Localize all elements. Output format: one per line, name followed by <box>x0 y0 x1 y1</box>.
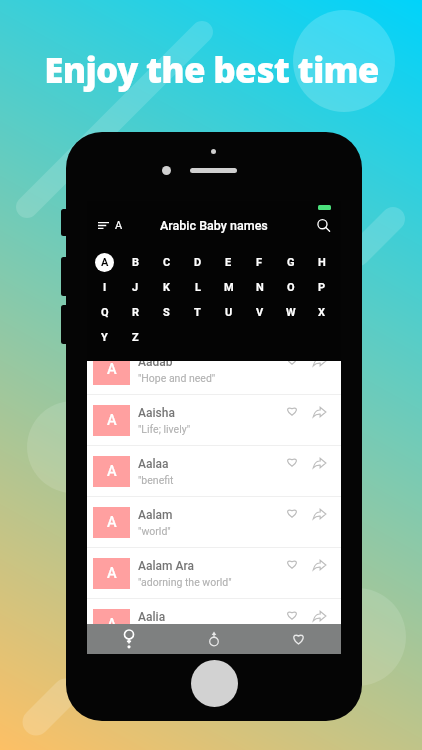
button[interactable]: O <box>275 275 306 300</box>
staticText: A <box>107 565 117 582</box>
button[interactable]: S <box>151 300 182 325</box>
staticText: Aalia <box>138 610 166 624</box>
button[interactable]: Favourite <box>286 560 298 569</box>
button[interactable]: Share <box>313 356 326 366</box>
staticText: Aalaa <box>138 457 169 471</box>
staticText: A <box>115 219 123 232</box>
staticText: U <box>225 306 233 319</box>
button[interactable]: P <box>306 275 337 300</box>
button[interactable]: X <box>306 300 337 325</box>
button[interactable]: Search <box>313 215 341 236</box>
button[interactable]: A <box>87 344 341 395</box>
staticText: V <box>256 306 264 319</box>
staticText: T <box>194 306 201 319</box>
staticText: "benefit <box>138 474 174 486</box>
button[interactable]: W <box>275 300 306 325</box>
staticText: Aalam <box>138 508 173 522</box>
button[interactable]: I <box>89 275 120 300</box>
button[interactable]: E <box>213 250 244 275</box>
staticText: B <box>132 256 140 269</box>
button[interactable]: A <box>87 446 341 497</box>
staticText: O <box>287 281 295 294</box>
staticText: E <box>225 256 232 269</box>
staticText: N <box>256 281 264 294</box>
button[interactable]: Share <box>313 458 326 468</box>
button[interactable]: N <box>244 275 275 300</box>
staticText: "world" <box>138 525 171 537</box>
button[interactable]: R <box>120 300 151 325</box>
button[interactable]: A <box>87 548 341 599</box>
staticText: F <box>256 256 263 269</box>
staticText: "Hope and need" <box>138 372 216 384</box>
staticText: Q <box>101 306 109 319</box>
button[interactable]: F <box>244 250 275 275</box>
staticText: Aaisha <box>138 406 175 420</box>
staticText: A <box>107 514 117 531</box>
button[interactable]: Share <box>313 509 326 519</box>
staticText: "adorning the world" <box>138 576 232 588</box>
staticText: I <box>103 281 107 294</box>
staticText: G <box>287 256 295 269</box>
staticText: A <box>107 361 117 378</box>
button[interactable]: V <box>244 300 275 325</box>
button[interactable]: H <box>306 250 337 275</box>
button[interactable]: Favourite <box>286 458 298 467</box>
staticText: L <box>195 281 201 294</box>
button[interactable]: Male names <box>171 624 256 654</box>
staticText: A <box>107 463 117 480</box>
staticText: Aadab <box>138 355 173 369</box>
staticText: H <box>318 256 326 269</box>
staticText: W <box>286 306 296 319</box>
staticText: C <box>163 256 171 269</box>
button[interactable]: L <box>182 275 213 300</box>
button[interactable]: M <box>213 275 244 300</box>
button[interactable]: J <box>120 275 151 300</box>
staticText: Arabic Baby names <box>160 218 268 233</box>
button[interactable]: Favourite <box>286 509 298 518</box>
button[interactable]: Female names <box>87 624 171 654</box>
button[interactable]: G <box>275 250 306 275</box>
button[interactable]: K <box>151 275 182 300</box>
button[interactable]: B <box>120 250 151 275</box>
button[interactable]: Q <box>89 300 120 325</box>
staticText: A <box>107 616 117 633</box>
button[interactable]: Share <box>313 407 326 417</box>
button[interactable]: A <box>89 250 120 275</box>
staticText: R <box>132 306 140 319</box>
button[interactable]: Favourite <box>286 611 298 620</box>
button[interactable]: Z <box>120 325 151 350</box>
button[interactable]: Share <box>313 611 326 621</box>
staticText: Enjoy the best time <box>44 46 379 94</box>
button[interactable]: U <box>213 300 244 325</box>
button[interactable]: C <box>151 250 182 275</box>
button[interactable]: A <box>87 395 341 446</box>
button[interactable]: A <box>87 599 341 650</box>
staticText: P <box>318 281 326 294</box>
staticText: X <box>318 306 325 319</box>
staticText: Z <box>132 331 139 344</box>
staticText: Y <box>101 331 108 344</box>
button[interactable]: D <box>182 250 213 275</box>
staticText: K <box>163 281 170 294</box>
button[interactable]: Favourites <box>256 624 341 654</box>
button[interactable]: Favourite <box>286 356 298 365</box>
staticText: D <box>194 256 202 269</box>
button[interactable]: T <box>182 300 213 325</box>
button[interactable]: A <box>87 497 341 548</box>
button[interactable]: Share <box>313 560 326 570</box>
button[interactable]: Favourite <box>286 407 298 416</box>
staticText: S <box>163 306 170 319</box>
button[interactable]: Y <box>89 325 120 350</box>
staticText: A <box>101 256 109 269</box>
staticText: "Life; lively" <box>138 423 191 435</box>
button[interactable]: A <box>87 215 129 236</box>
staticText: Aalam Ara <box>138 559 195 573</box>
staticText: A <box>107 412 117 429</box>
